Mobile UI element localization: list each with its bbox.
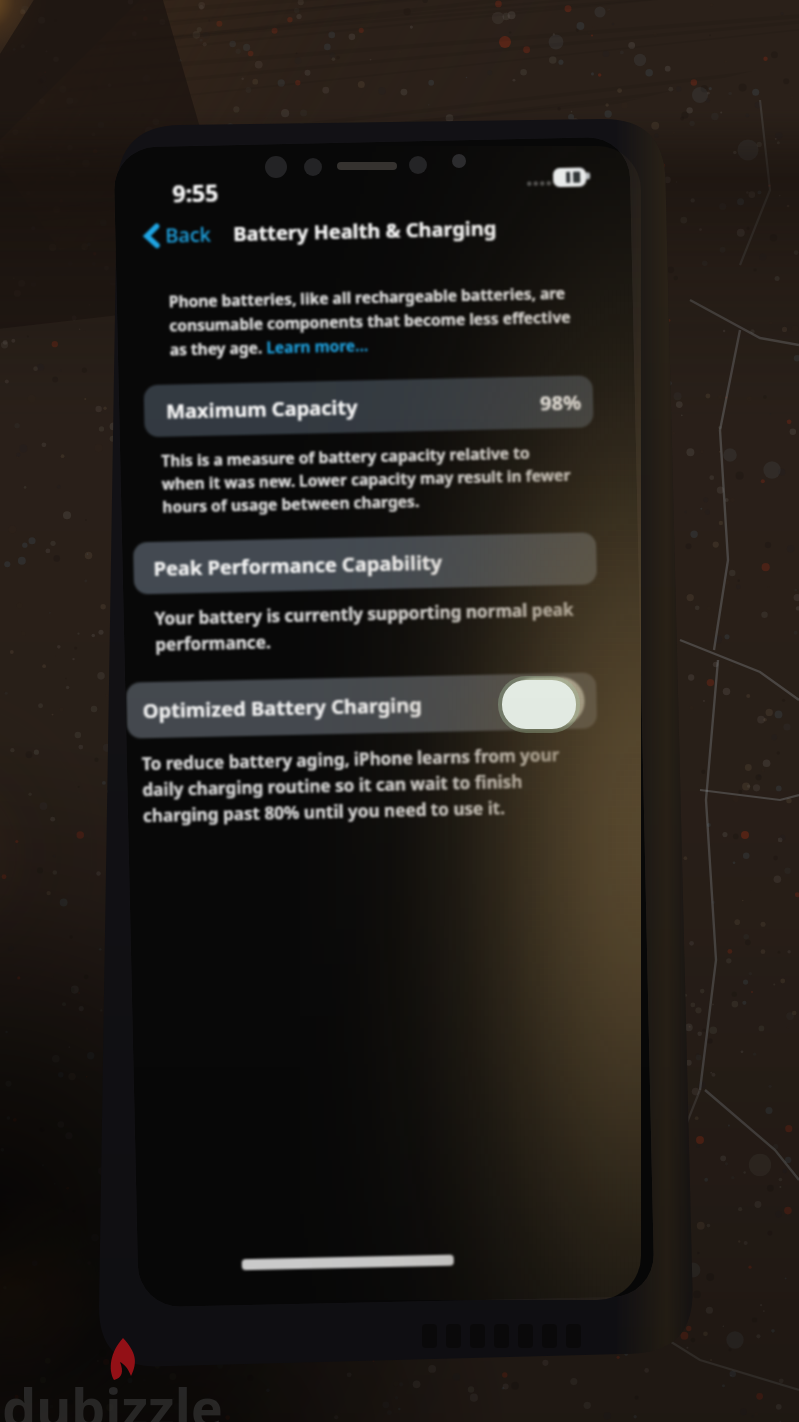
staticText: Peak Performance Capability [153,549,443,582]
staticText: dubizzle [2,1370,224,1422]
button[interactable]: Phone batteries, like all rechargeable b… [168,282,572,360]
staticText: 9:55 [172,176,219,208]
button[interactable]: Maximum Capacity [144,375,594,437]
other: Battery 53 percent [526,163,606,193]
staticText: To reduce battery aging, iPhone learns f… [142,743,561,827]
button[interactable]: Back [137,215,220,254]
staticText: This is a measure of battery capacity re… [161,441,571,518]
staticText: 98% [540,389,581,416]
staticText: Maximum Capacity [166,393,358,425]
staticText: Back [165,221,212,249]
button[interactable]: Peak Performance Capability [133,532,597,594]
button[interactable]: Optimized Battery Charging [126,672,597,739]
staticText: Battery Health & Charging [233,214,497,247]
button[interactable]: Optimized Battery Charging toggle [510,677,585,726]
staticText: Optimized Battery Charging [142,691,423,724]
staticText: Your battery is currently supporting nor… [154,598,574,656]
